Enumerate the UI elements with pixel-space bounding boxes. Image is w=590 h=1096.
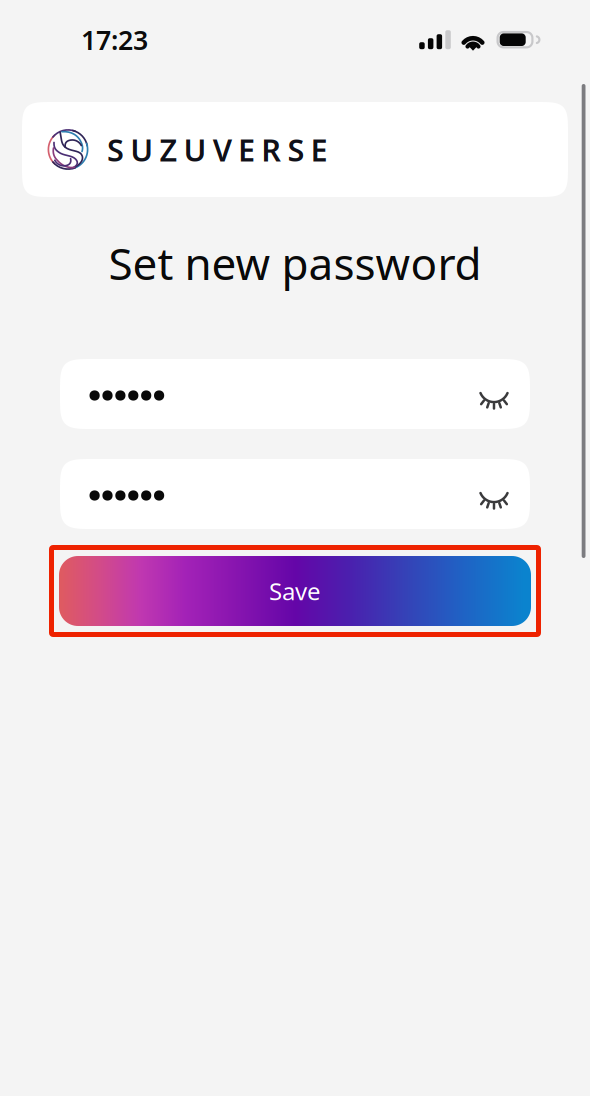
staticText: E: [311, 129, 328, 170]
staticText: U: [130, 129, 153, 170]
staticText: U: [184, 129, 207, 170]
staticText: V: [213, 129, 232, 170]
staticText: S: [107, 129, 124, 170]
staticText: Save: [269, 575, 321, 607]
staticText: Set new password: [108, 234, 481, 292]
staticText: R: [261, 129, 281, 170]
button[interactable]: Show password: [470, 359, 530, 429]
staticText: S: [287, 129, 304, 170]
staticText: E: [238, 129, 255, 170]
button[interactable]: Show password: [470, 459, 530, 529]
button[interactable]: Save: [49, 545, 541, 637]
staticText: 17:23: [81, 22, 148, 57]
staticText: Z: [159, 129, 177, 170]
